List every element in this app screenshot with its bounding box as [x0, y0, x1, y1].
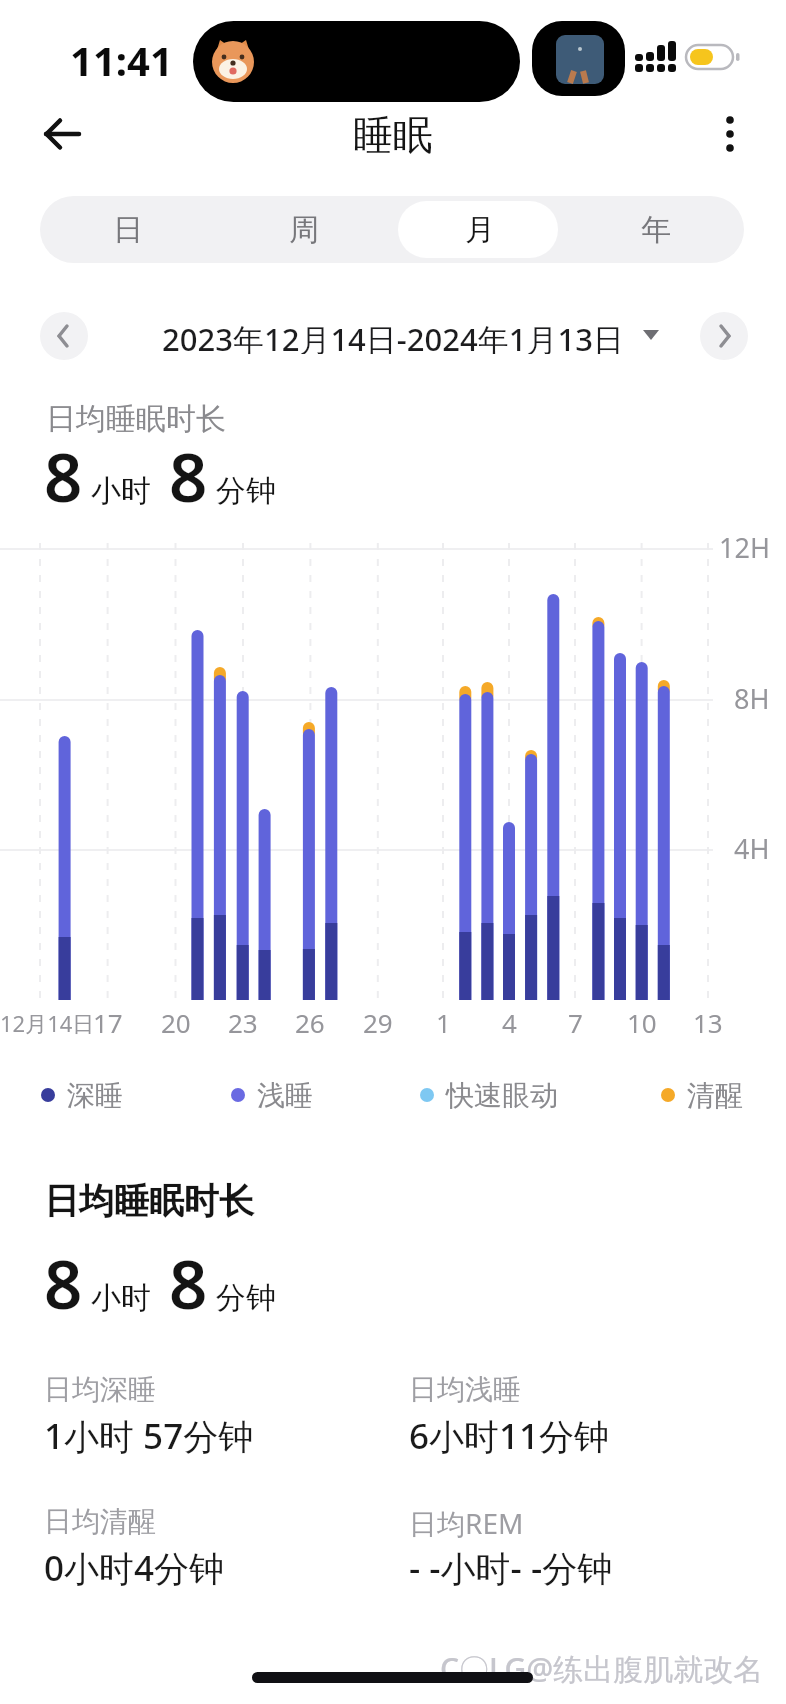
staticText: 7 — [568, 1005, 583, 1035]
staticText: 13 — [693, 1005, 723, 1035]
button[interactable]: 年 — [568, 196, 744, 263]
staticText: 17 — [93, 1005, 123, 1035]
staticText: 29 — [363, 1005, 393, 1035]
button[interactable]: 日 — [40, 196, 216, 263]
staticText: 4H — [734, 830, 770, 862]
staticText: 分钟 — [216, 472, 276, 510]
button[interactable]: 2023年12月14日-2024年1月13日 — [0, 318, 786, 354]
staticText: 快速眼动 — [446, 1078, 558, 1113]
staticText: 20 — [161, 1005, 191, 1035]
button[interactable] — [712, 108, 748, 160]
staticText: 1小时 57分钟 — [44, 1412, 254, 1460]
staticText: 日均浅睡 — [409, 1372, 521, 1407]
staticText: 深睡 — [67, 1078, 123, 1113]
staticText: 8 — [44, 1237, 83, 1328]
staticText: 小时 — [91, 472, 151, 510]
staticText: 12H — [719, 529, 770, 561]
button[interactable] — [40, 312, 88, 360]
staticText: - -小时- -分钟 — [409, 1544, 613, 1592]
staticText: 小时 — [91, 1279, 151, 1317]
staticText: 26 — [295, 1005, 325, 1035]
staticText: 日均深睡 — [44, 1372, 156, 1407]
staticText: 日均REM — [409, 1504, 524, 1542]
staticText: 日均睡眠时长 — [44, 1179, 254, 1223]
staticText: 0小时4分钟 — [44, 1544, 225, 1592]
staticText: 清醒 — [687, 1078, 743, 1113]
staticText: 周 — [289, 211, 319, 249]
staticText: 年 — [641, 211, 671, 249]
staticText: 日均清醒 — [44, 1504, 156, 1539]
button[interactable] — [36, 108, 90, 160]
staticText: 2023年12月14日-2024年1月13日 — [162, 318, 624, 354]
staticText: 8 — [169, 1237, 208, 1328]
button[interactable]: 月 — [392, 196, 568, 263]
button[interactable] — [700, 312, 748, 360]
staticText: 4 — [502, 1005, 517, 1035]
staticText: 8H — [734, 680, 770, 712]
staticText: C〇LG@练出腹肌就改名 — [440, 1648, 764, 1689]
staticText: 日均睡眠时长 — [46, 400, 226, 438]
staticText: 分钟 — [216, 1279, 276, 1317]
staticText: 10 — [627, 1005, 657, 1035]
button[interactable]: 周 — [216, 196, 392, 263]
staticText: 6小时11分钟 — [409, 1412, 610, 1460]
staticText: 月 — [465, 211, 495, 249]
staticText: 1 — [436, 1005, 451, 1035]
staticText: 12月14日 — [0, 1008, 95, 1038]
staticText: 日 — [113, 211, 143, 249]
staticText: 睡眠 — [353, 110, 433, 156]
staticText: 11:41 — [70, 33, 173, 87]
staticText: 8 — [169, 430, 208, 521]
staticText: 23 — [228, 1005, 258, 1035]
staticText: 8 — [44, 430, 83, 521]
staticText: 浅睡 — [257, 1078, 313, 1113]
